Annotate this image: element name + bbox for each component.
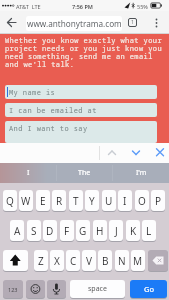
staticText: O [138, 194, 146, 208]
staticText: R [56, 194, 63, 208]
staticText: The [78, 168, 91, 178]
staticText: H [96, 224, 104, 238]
staticText: I'm [136, 168, 147, 178]
button[interactable] [47, 280, 66, 298]
button[interactable]: O [135, 190, 149, 211]
staticText: J [115, 224, 118, 238]
staticText: E [40, 194, 46, 208]
button[interactable]: H [93, 220, 107, 241]
button[interactable]: I [118, 190, 132, 211]
button[interactable]: X [50, 250, 64, 271]
staticText: N [118, 254, 126, 268]
button[interactable]: E [36, 190, 50, 211]
button[interactable]: A [10, 220, 24, 241]
button[interactable]: C [66, 250, 80, 271]
staticText: D [46, 224, 54, 238]
staticText: K [130, 224, 137, 238]
staticText: P [155, 194, 162, 208]
staticText: I [27, 168, 30, 178]
staticText: 123 [8, 286, 18, 293]
button[interactable]: K [126, 220, 140, 241]
staticText: Go [144, 284, 154, 294]
staticText: My name is [9, 88, 56, 98]
button[interactable]: D [43, 220, 57, 241]
button[interactable]: Y [85, 190, 99, 211]
button[interactable]: Z [34, 250, 48, 271]
staticText: I [123, 194, 127, 208]
button[interactable]: P [151, 190, 165, 211]
button[interactable]: I [0, 163, 56, 183]
staticText: 1 [131, 19, 134, 26]
staticText: www.anthonytrama.com [27, 18, 122, 29]
button[interactable]: R [52, 190, 66, 211]
staticText: L [146, 224, 152, 238]
button[interactable] [107, 148, 117, 157]
button[interactable]: N [115, 250, 129, 271]
button[interactable]: www.anthonytrama.com [26, 16, 122, 31]
button[interactable]: 1 [128, 18, 137, 27]
button[interactable] [3, 250, 28, 271]
button[interactable]: T [69, 190, 83, 211]
staticText: Whether you know exactly what your proje… [5, 36, 163, 69]
button[interactable]: M [131, 250, 145, 271]
staticText: F [64, 224, 70, 238]
staticText: A [14, 224, 21, 238]
staticText: U [105, 194, 113, 208]
button[interactable]: And I want to say [5, 121, 157, 143]
button[interactable] [131, 148, 141, 157]
staticText: W [21, 194, 31, 208]
staticText: AT&T LTE [16, 3, 41, 10]
button[interactable] [26, 280, 45, 298]
button[interactable]: J [109, 220, 123, 241]
staticText: S [31, 224, 37, 238]
staticText: X [54, 254, 60, 268]
button[interactable]: U [102, 190, 116, 211]
button[interactable]: I can be emailed at [5, 103, 157, 117]
button[interactable] [6, 17, 17, 28]
staticText: B [102, 254, 109, 268]
staticText: And I want to say [9, 124, 88, 134]
button[interactable]: V [82, 250, 96, 271]
button[interactable]: My name is [5, 85, 157, 99]
staticText: Y [89, 194, 95, 208]
button[interactable] [148, 250, 168, 271]
staticText: V [86, 254, 92, 268]
staticText: C [70, 254, 77, 268]
button[interactable]: I'm [113, 163, 169, 183]
button[interactable] [153, 18, 160, 28]
staticText: M [133, 254, 143, 268]
staticText: space [88, 284, 107, 294]
staticText: Q [6, 194, 14, 208]
staticText: G [79, 224, 87, 238]
button[interactable]: Go [130, 280, 167, 298]
button[interactable]: F [60, 220, 74, 241]
button[interactable]: L [142, 220, 156, 241]
staticText: 55% [137, 3, 148, 10]
button[interactable]: space [70, 280, 125, 298]
button[interactable]: S [27, 220, 41, 241]
staticText: T [73, 194, 79, 208]
button[interactable]: B [98, 250, 112, 271]
button[interactable] [155, 147, 165, 158]
staticText: 7:56 PM [72, 3, 93, 10]
button[interactable]: The [57, 163, 112, 183]
staticText: Z [38, 254, 44, 268]
staticText: I can be emailed at [9, 106, 97, 116]
button[interactable]: 123 [3, 280, 23, 298]
button[interactable]: Q [3, 190, 17, 211]
button[interactable]: G [76, 220, 90, 241]
button[interactable]: W [19, 190, 33, 211]
